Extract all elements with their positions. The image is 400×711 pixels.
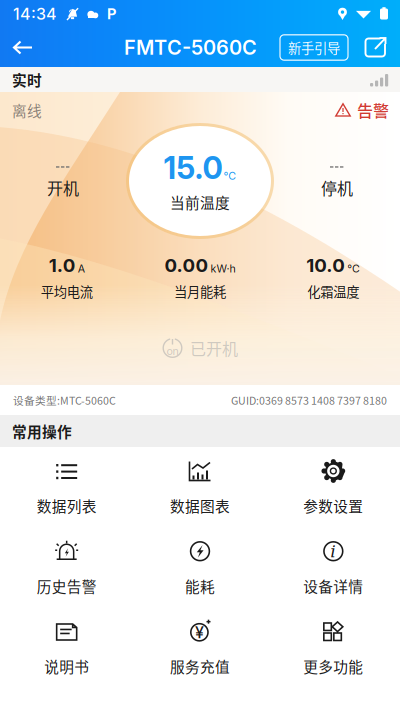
button[interactable]: 更多功能 bbox=[267, 609, 400, 690]
button[interactable]: 历史告警 bbox=[0, 529, 133, 609]
button[interactable]: 说明书 bbox=[0, 609, 133, 690]
button[interactable]: 能耗 bbox=[133, 529, 267, 609]
button[interactable]: 参数设置 bbox=[267, 449, 400, 529]
button[interactable]: 新手引导 bbox=[280, 35, 348, 60]
staticText: 平均电流 bbox=[41, 282, 93, 301]
staticText: 说明书 bbox=[44, 655, 89, 677]
staticText: 当月能耗 bbox=[174, 282, 226, 301]
staticText: 设备类型:MTC-5060C bbox=[13, 392, 116, 408]
staticText: 更多功能 bbox=[303, 655, 363, 677]
staticText: i bbox=[330, 541, 336, 561]
staticText: GUID:0369 8573 1408 7397 8180 bbox=[231, 392, 387, 408]
staticText: ¥ bbox=[195, 623, 204, 642]
button[interactable]: 数据列表 bbox=[0, 449, 133, 529]
staticText: 历史告警 bbox=[37, 575, 97, 596]
staticText: 数据列表 bbox=[37, 495, 97, 516]
button[interactable]: 数据图表 bbox=[133, 449, 267, 529]
staticText: 当前温度 bbox=[170, 191, 230, 213]
staticText: 0.00 bbox=[164, 254, 208, 277]
staticText: on bbox=[166, 345, 178, 358]
staticText: 常用操作 bbox=[12, 420, 72, 442]
staticText: 离线 bbox=[12, 99, 42, 121]
staticText: 实时 bbox=[12, 69, 42, 90]
button[interactable]: i bbox=[267, 529, 400, 609]
staticText: 14:34 bbox=[13, 4, 57, 24]
staticText: 10.0 bbox=[306, 254, 345, 277]
staticText: A bbox=[78, 262, 85, 275]
staticText: 15.0 bbox=[163, 149, 222, 186]
staticText: 停机 bbox=[321, 176, 353, 199]
button[interactable]: 返回 bbox=[0, 28, 46, 67]
staticText: 设备详情 bbox=[303, 575, 363, 596]
staticText: 告警 bbox=[357, 98, 389, 122]
staticText: 参数设置 bbox=[303, 495, 363, 516]
staticText: kW·h bbox=[210, 262, 235, 275]
staticText: 能耗 bbox=[185, 575, 215, 596]
staticText: ℃ bbox=[347, 262, 360, 275]
staticText: ℃ bbox=[223, 169, 236, 182]
staticText: 数据图表 bbox=[170, 495, 230, 516]
button[interactable]: 分享 bbox=[360, 29, 392, 66]
staticText: 服务充值 bbox=[170, 655, 230, 677]
button[interactable]: ¥ bbox=[133, 609, 267, 690]
staticText: P bbox=[107, 5, 117, 23]
staticText: FMTC-5060C bbox=[124, 35, 257, 60]
staticText: 1.0 bbox=[49, 254, 76, 277]
button[interactable]: on bbox=[162, 331, 238, 365]
staticText: 已开机 bbox=[190, 336, 238, 360]
staticText: 新手引导 bbox=[288, 38, 340, 57]
staticText: 化霜温度 bbox=[307, 282, 359, 301]
staticText: 开机 bbox=[47, 176, 79, 199]
